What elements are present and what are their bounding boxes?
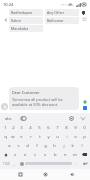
staticText: k: [71, 143, 74, 149]
button[interactable]: e: [17, 132, 26, 141]
button[interactable]: Menu: [81, 10, 86, 15]
staticText: m: [73, 152, 77, 158]
button[interactable]: a: [4, 141, 14, 150]
staticText: x: [24, 152, 27, 158]
button[interactable]: c: [30, 150, 40, 159]
staticText: p: [83, 134, 86, 140]
button[interactable]: m: [70, 150, 80, 159]
button[interactable]: Collapse suggestions: [2, 9, 9, 31]
button[interactable]: z: [10, 150, 20, 159]
button[interactable]: Settings: [67, 114, 75, 122]
button[interactable]: abc: [4, 114, 13, 122]
button[interactable]: j: [59, 141, 68, 150]
button[interactable]: b: [50, 150, 60, 159]
button[interactable]: Marahaba: [9, 25, 43, 32]
button[interactable]: x: [20, 150, 30, 159]
button[interactable]: 8: [62, 123, 71, 132]
staticText: Tomorrow all product will be available a…: [12, 97, 76, 107]
button[interactable]: v: [40, 150, 50, 159]
button[interactable]: Backspace: [80, 150, 89, 159]
button[interactable]: 7: [53, 123, 62, 132]
button[interactable]: Collapse keyboard: [79, 115, 86, 122]
button[interactable]: Recents: [14, 169, 26, 180]
staticText: Any Other: [47, 10, 65, 15]
button[interactable]: 1: [1, 123, 9, 132]
staticText: Marahaba: [11, 26, 29, 31]
staticText: v: [44, 152, 47, 158]
staticText: z: [14, 152, 16, 158]
button[interactable]: k: [68, 141, 77, 150]
button[interactable]: Any Other: [45, 9, 79, 16]
button[interactable]: 0: [80, 123, 89, 132]
button[interactable]: r: [26, 132, 35, 141]
staticText: w: [11, 134, 15, 140]
staticText: l: [81, 143, 83, 149]
staticText: ?123: [3, 162, 10, 166]
staticText: Dear Customer: [12, 90, 40, 95]
button[interactable]: g: [41, 141, 50, 150]
button[interactable]: Shift: [1, 150, 10, 159]
staticText: c: [34, 152, 37, 158]
button[interactable]: 9: [71, 123, 80, 132]
button[interactable]: Emoji: [18, 159, 25, 168]
button[interactable]: 6: [44, 123, 53, 132]
button[interactable]: y: [44, 132, 53, 141]
staticText: a: [8, 143, 11, 149]
staticText: Badhedayan: [11, 10, 33, 15]
button[interactable]: u: [53, 132, 62, 141]
button[interactable]: Balhomar: [45, 17, 79, 24]
staticText: 1: [4, 125, 7, 131]
staticText: g: [44, 143, 47, 149]
staticText: 5: [38, 125, 41, 131]
staticText: .: [75, 161, 77, 167]
button[interactable]: h: [50, 141, 59, 150]
button[interactable]: ,: [11, 159, 18, 168]
button[interactable]: Kabro: [9, 17, 43, 24]
button[interactable]: p: [80, 132, 89, 141]
button[interactable]: 3: [17, 123, 26, 132]
staticText: 6: [47, 125, 50, 131]
button[interactable]: 2: [9, 123, 17, 132]
button[interactable]: Back: [65, 169, 77, 180]
button[interactable]: Sender avatar: [1, 103, 8, 110]
button[interactable]: Enter: [80, 159, 89, 168]
staticText: f: [36, 143, 38, 149]
staticText: Kabro: [11, 18, 22, 23]
staticText: b: [54, 152, 57, 158]
staticText: 8: [65, 125, 68, 131]
button[interactable]: Stickers: [19, 114, 27, 122]
staticText: u: [56, 134, 59, 140]
button[interactable]: More: [82, 17, 86, 21]
staticText: ,: [14, 161, 16, 167]
staticText: Balhomar: [47, 18, 64, 23]
button[interactable]: 5: [35, 123, 44, 132]
staticText: o: [74, 134, 77, 140]
button[interactable]: s: [14, 141, 23, 150]
button[interactable]: d: [23, 141, 32, 150]
staticText: 2: [12, 125, 15, 131]
button[interactable]: .: [72, 159, 80, 168]
staticText: i: [66, 134, 68, 140]
staticText: h: [53, 143, 56, 149]
button[interactable]: q: [1, 132, 9, 141]
staticText: q: [4, 134, 7, 140]
button[interactable]: Send: [83, 106, 87, 110]
button[interactable]: Symbols: [1, 159, 11, 168]
staticText: d: [26, 143, 29, 149]
button[interactable]: Home: [39, 169, 51, 180]
staticText: abc: [5, 116, 12, 121]
button[interactable]: o: [71, 132, 80, 141]
button[interactable]: w: [9, 132, 17, 141]
button[interactable]: Dear Customer: [9, 87, 79, 110]
button[interactable]: n: [60, 150, 70, 159]
button[interactable]: Badhedayan: [9, 9, 43, 16]
staticText: 3: [20, 125, 23, 131]
button[interactable]: f: [32, 141, 41, 150]
button[interactable]: t: [35, 132, 44, 141]
button[interactable]: l: [77, 141, 86, 150]
button[interactable]: 4: [26, 123, 35, 132]
staticText: 9: [74, 125, 77, 131]
button[interactable]: Add: [82, 99, 88, 105]
button[interactable]: i: [62, 132, 71, 141]
